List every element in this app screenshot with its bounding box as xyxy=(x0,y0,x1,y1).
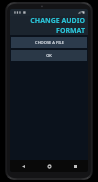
staticText: CHANGE AUDIO xyxy=(30,16,85,26)
button[interactable]: Back xyxy=(10,160,36,172)
staticText: FORMAT xyxy=(56,26,85,35)
button[interactable]: Recent apps xyxy=(62,160,88,172)
staticText: CHOOSE A FILE xyxy=(35,40,64,45)
staticText: OK xyxy=(46,53,52,58)
button[interactable]: CHOOSE A FILE xyxy=(11,37,87,48)
button[interactable]: OK xyxy=(11,50,87,61)
button[interactable]: Home xyxy=(36,160,62,172)
